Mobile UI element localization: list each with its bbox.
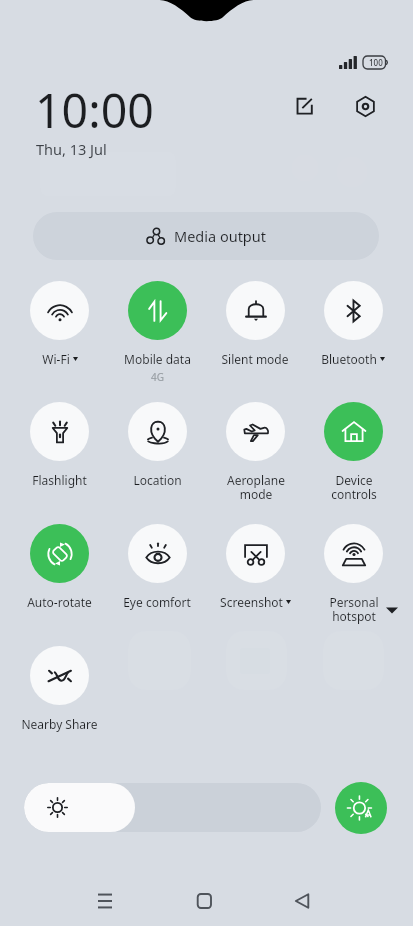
- staticText: Aeroplane mode: [227, 472, 285, 503]
- button[interactable]: Bluetooth: [309, 281, 397, 367]
- button[interactable]: Back: [276, 875, 328, 926]
- staticText: 10:00: [35, 78, 154, 141]
- button[interactable]: Auto-rotate: [15, 524, 103, 610]
- button[interactable]: Location: [113, 402, 201, 488]
- staticText: Location: [133, 472, 182, 488]
- button[interactable]: Settings: [343, 84, 387, 128]
- staticText: Silent mode: [221, 351, 289, 367]
- staticText: Device controls: [331, 472, 377, 503]
- staticText: 4G: [151, 370, 164, 384]
- staticText: Nearby Share: [21, 716, 98, 732]
- button[interactable]: Wi-Fi: [15, 281, 103, 367]
- button[interactable]: Mobile data: [113, 281, 201, 384]
- staticText: Thu, 13 Jul: [36, 139, 107, 159]
- staticText: 100: [369, 57, 383, 68]
- button[interactable]: Recents: [79, 875, 131, 926]
- button[interactable]: Auto brightness: [335, 782, 387, 834]
- button[interactable]: Expand: [380, 598, 404, 622]
- button[interactable]: Brightness: [24, 783, 321, 832]
- button[interactable]: Eye comfort: [113, 524, 201, 610]
- button[interactable]: Screenshot: [211, 524, 299, 610]
- button[interactable]: Flashlight: [15, 402, 103, 488]
- button[interactable]: Personal hotspot: [309, 524, 397, 625]
- button[interactable]: Silent mode: [211, 281, 299, 367]
- staticText: Screenshot: [220, 594, 283, 610]
- staticText: Wi-Fi: [42, 351, 70, 367]
- staticText: Eye comfort: [123, 594, 191, 610]
- staticText: Media output: [174, 226, 266, 246]
- staticText: Bluetooth: [321, 351, 377, 367]
- button[interactable]: Edit: [283, 84, 327, 128]
- button[interactable]: Nearby Share: [15, 646, 103, 732]
- staticText: Flashlight: [32, 472, 87, 488]
- staticText: Auto-rotate: [27, 594, 92, 610]
- button[interactable]: Aeroplane mode: [211, 402, 299, 503]
- button[interactable]: Device controls: [309, 402, 397, 503]
- staticText: Personal hotspot: [329, 594, 379, 625]
- staticText: Mobile data: [124, 351, 191, 367]
- button[interactable]: Media output: [33, 212, 379, 260]
- button[interactable]: Home: [178, 875, 230, 926]
